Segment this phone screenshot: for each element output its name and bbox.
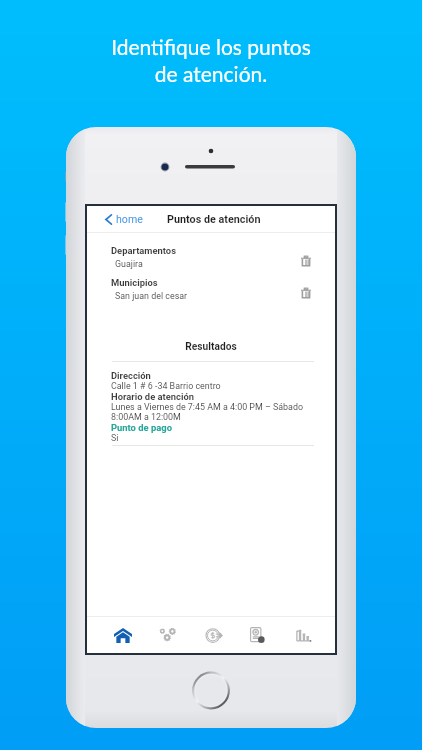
button[interactable]: Payments	[198, 617, 230, 653]
staticText: Lunes a Viernes de 7:45 AM a 4:00 PM – S…	[111, 402, 304, 422]
staticText: Calle 1 # 6 -34 Barrio centro	[111, 381, 221, 391]
staticText: Puntos de atención	[167, 213, 261, 226]
staticText: Resultados	[87, 341, 335, 353]
staticText: Si	[111, 433, 119, 443]
staticText: San juan del cesar	[115, 291, 188, 301]
staticText: Municipios	[111, 277, 158, 288]
button[interactable]: Documents	[241, 617, 273, 653]
staticText: Guajira	[115, 259, 143, 269]
staticText: Punto de pago	[111, 422, 172, 433]
button[interactable]: Delete	[298, 285, 314, 301]
staticText: Identifique los puntos de atención.	[0, 34, 422, 87]
staticText: Horario de atención	[111, 391, 195, 402]
button[interactable]: Statistics	[287, 617, 319, 653]
button[interactable]: Settings	[152, 617, 184, 653]
button[interactable]: home	[87, 209, 151, 229]
button[interactable]: Delete	[298, 253, 314, 269]
button[interactable]: Home	[107, 617, 139, 653]
staticText: Dirección	[111, 370, 151, 381]
staticText: Departamentos	[111, 245, 177, 256]
staticText: home	[116, 213, 143, 225]
